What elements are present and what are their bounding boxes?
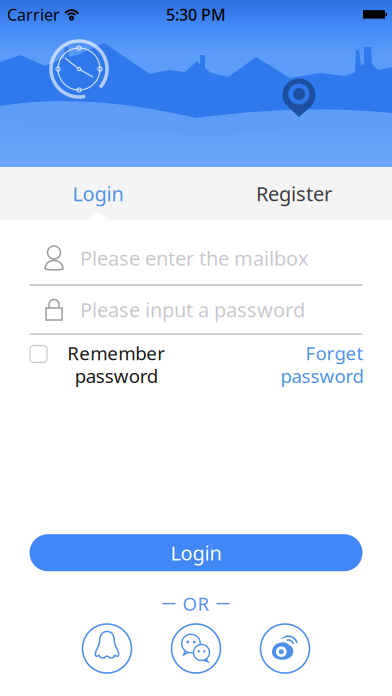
staticText: 5:30 PM [166, 4, 226, 25]
button[interactable]: Login [29, 534, 362, 571]
staticText: OR [182, 591, 209, 616]
button[interactable]: Login [0, 167, 196, 220]
button[interactable]: Register [196, 167, 392, 220]
button[interactable]: Sign in with WeChat [171, 624, 220, 673]
button[interactable]: Sign in with Weibo [260, 624, 309, 673]
staticText: Login [170, 539, 221, 566]
button[interactable]: Remember password [0, 340, 165, 388]
staticText: Forget password [280, 340, 363, 388]
staticText: Login [72, 180, 123, 207]
staticText: Carrier [7, 4, 60, 25]
button[interactable]: Sign in with QQ [82, 624, 131, 673]
staticText: Remember password [67, 340, 165, 388]
staticText: Register [256, 180, 332, 207]
staticText: Please input a password [80, 296, 305, 323]
staticText: Please enter the mailbox [80, 245, 309, 271]
button[interactable]: Forget password [280, 340, 392, 388]
